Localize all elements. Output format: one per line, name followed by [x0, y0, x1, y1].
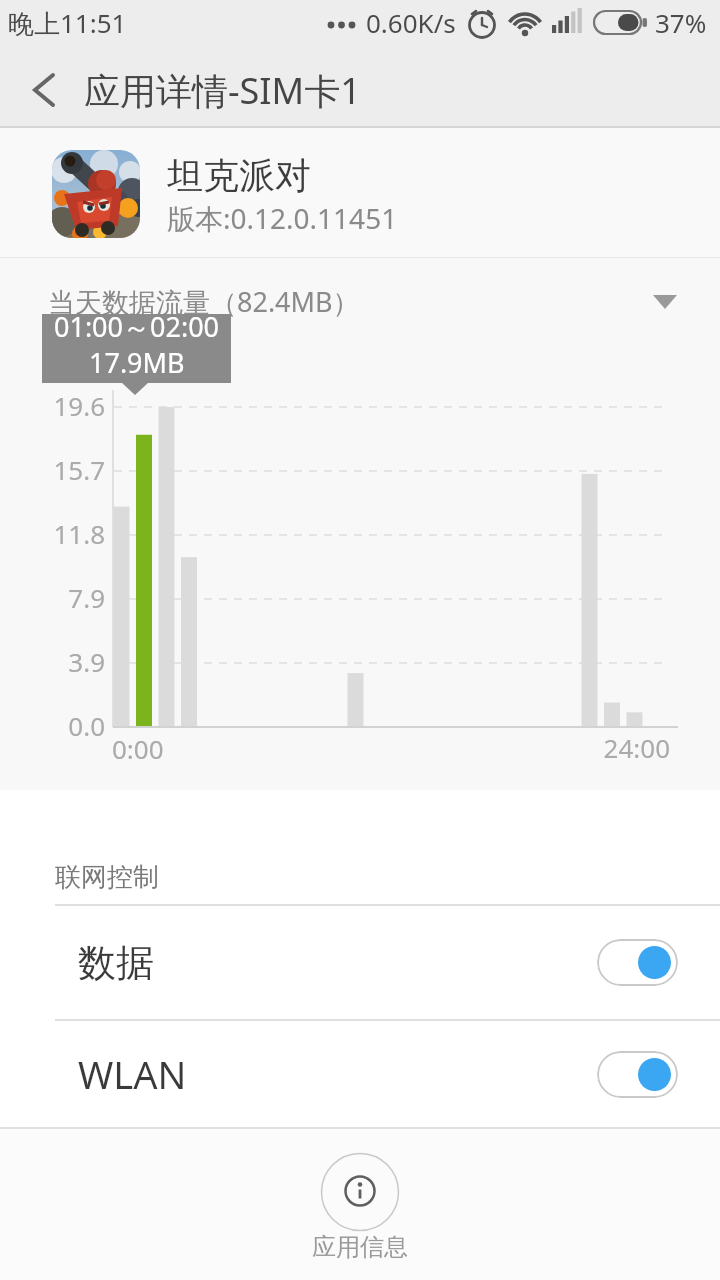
button[interactable]: 数据 [0, 906, 720, 1019]
staticText: 应用详情-SIM卡1 [84, 66, 361, 115]
staticText: 数据 [78, 939, 154, 987]
staticText: 坦克派对 [167, 153, 311, 198]
staticText: 联网控制 [55, 861, 159, 894]
button[interactable] [636, 282, 696, 322]
button[interactable] [597, 939, 678, 986]
staticText: WLAN [78, 1048, 187, 1100]
staticText: 15.7 [35, 452, 105, 487]
staticText: 24:00 [550, 730, 670, 765]
staticText: 37% [655, 5, 707, 40]
button[interactable]: 应用信息 [250, 1140, 470, 1275]
button[interactable] [597, 1051, 678, 1098]
button[interactable]: WLAN [0, 1021, 720, 1127]
staticText: 应用信息 [250, 1232, 470, 1262]
staticText: 19.6 [35, 388, 105, 423]
staticText: 7.9 [35, 580, 105, 615]
staticText: 11.8 [35, 516, 105, 551]
staticText: 晚上11:51 [8, 5, 127, 41]
staticText: 当天数据流量（82.4MB） [48, 283, 360, 320]
button[interactable] [18, 62, 70, 118]
staticText: 01:00～02:00 [54, 308, 220, 345]
staticText: 版本:0.12.0.11451 [167, 199, 398, 237]
staticText: 0.0 [35, 708, 105, 743]
staticText: 0.60K/s [366, 5, 456, 40]
staticText: 3.9 [35, 644, 105, 679]
staticText: 0:00 [112, 731, 164, 766]
staticText: 17.9MB [89, 344, 185, 381]
